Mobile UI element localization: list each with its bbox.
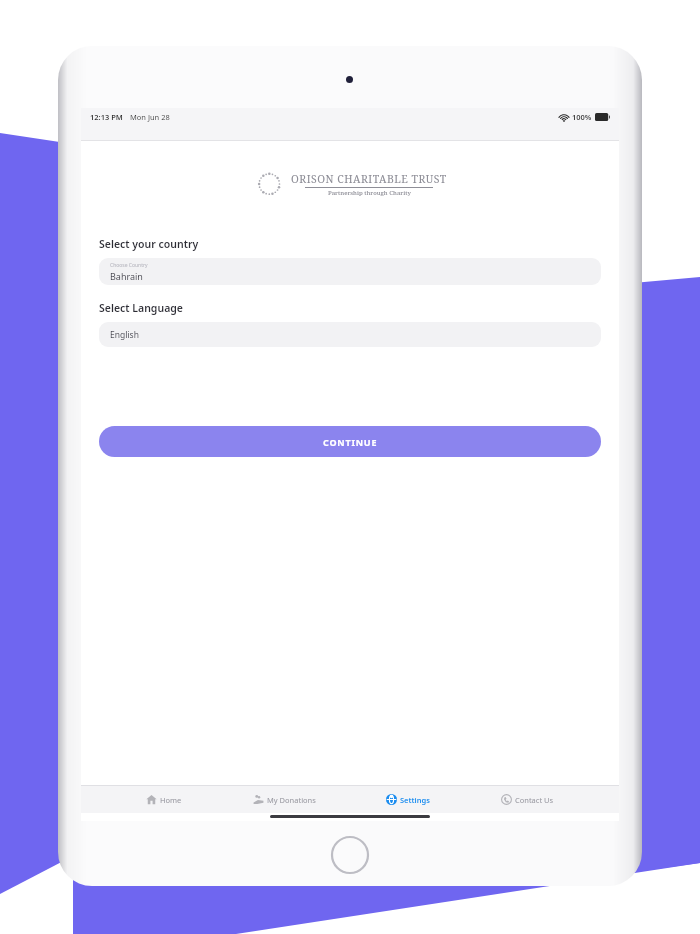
staticText: Choose Country — [110, 262, 148, 269]
other: Home button — [330, 835, 370, 875]
staticText: ORISON CHARITABLE TRUST — [291, 172, 447, 186]
staticText: 100% — [572, 112, 592, 122]
button[interactable]: Home — [140, 791, 188, 808]
staticText: Partnership through Charity — [328, 189, 411, 197]
button[interactable]: Settings — [380, 791, 436, 808]
button[interactable]: Choose Country — [99, 258, 601, 285]
staticText: My Donations — [267, 795, 316, 805]
staticText: Contact Us — [515, 795, 554, 805]
staticText: Select Language — [99, 301, 183, 315]
button[interactable]: My Donations — [247, 791, 322, 808]
staticText: Settings — [400, 795, 430, 805]
staticText: Mon Jun 28 — [130, 112, 170, 122]
staticText: Select your country — [99, 237, 199, 251]
staticText: Home — [160, 795, 182, 805]
staticText: Bahrain — [110, 270, 143, 282]
button[interactable]: Contact Us — [495, 791, 560, 808]
staticText: English — [110, 329, 139, 341]
staticText: CONTINUE — [323, 436, 378, 448]
button[interactable]: English — [99, 322, 601, 347]
button[interactable]: CONTINUE — [99, 426, 601, 457]
staticText: 12:13 PM — [90, 112, 123, 122]
